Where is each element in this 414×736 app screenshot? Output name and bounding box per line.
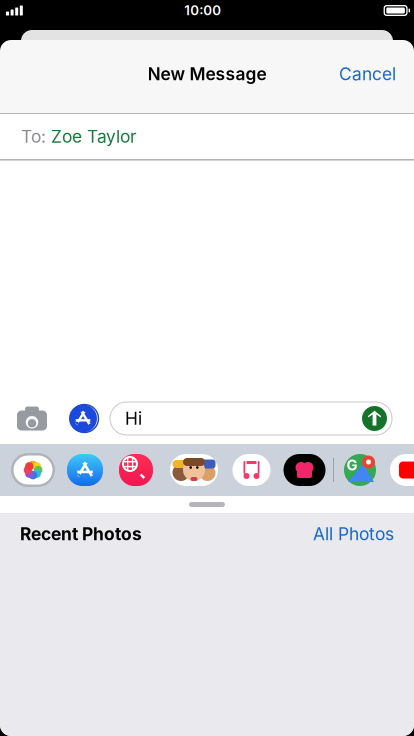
button[interactable]: Google Maps (335, 452, 385, 488)
staticText: Cancel (339, 64, 396, 84)
button[interactable]: Fitness (277, 452, 332, 488)
button[interactable]: Memoji (162, 452, 226, 488)
button[interactable]: Camera (0, 395, 64, 441)
staticText: G (346, 456, 357, 474)
button[interactable]: App Store (60, 452, 110, 488)
button[interactable]: YouTube (385, 452, 414, 488)
button[interactable]: Music (226, 452, 277, 488)
staticText: 10:00 (184, 3, 221, 18)
staticText: Zoe Taylor (51, 126, 137, 147)
button[interactable]: Cancel (321, 52, 414, 96)
staticText: New Message (147, 64, 266, 84)
button[interactable]: Send (359, 403, 390, 434)
button[interactable]: All Photos (313, 524, 394, 544)
button[interactable]: To: (0, 113, 414, 159)
staticText: Recent Photos (20, 524, 142, 544)
button[interactable]: Images (110, 452, 162, 488)
button[interactable]: App Store (64, 395, 110, 441)
staticText: All Photos (313, 524, 394, 544)
staticText: Hi (125, 408, 142, 429)
staticText: To: (21, 126, 46, 147)
button[interactable]: Photos (6, 452, 60, 488)
